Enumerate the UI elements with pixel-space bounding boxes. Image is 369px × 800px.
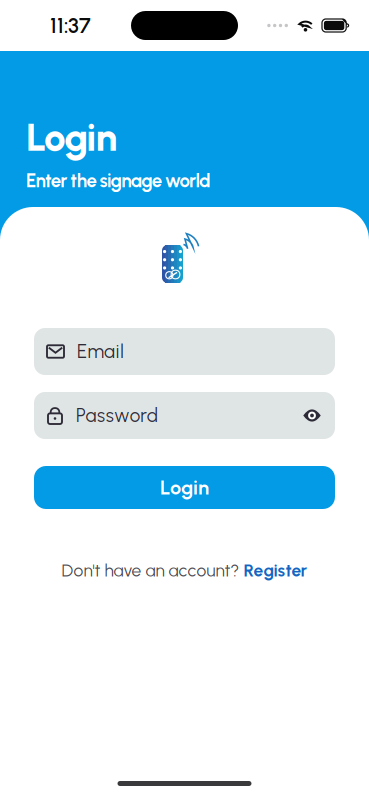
staticText: Password xyxy=(76,404,158,427)
staticText: Email xyxy=(77,340,124,363)
staticText: Login xyxy=(160,475,209,499)
staticText: Register xyxy=(243,560,307,581)
staticText: Enter the signage world xyxy=(26,169,211,192)
button[interactable]: Email xyxy=(34,328,335,375)
staticText: Login xyxy=(26,114,117,160)
staticText: Don't have an account? xyxy=(61,560,239,581)
button[interactable]: Password xyxy=(34,392,335,439)
staticText: 11:37 xyxy=(50,13,91,38)
button[interactable]: Don't have an account? xyxy=(61,560,307,581)
button[interactable]: Login xyxy=(34,466,335,509)
